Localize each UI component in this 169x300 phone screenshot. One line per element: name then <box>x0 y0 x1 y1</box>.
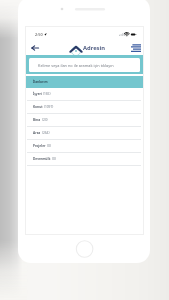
staticText: 2:50 <box>35 32 43 37</box>
staticText: Kelime veya ilan no ile aramak için tıkl… <box>38 63 114 68</box>
staticText: (0) <box>52 157 56 161</box>
button[interactable]: Bina <box>25 114 144 126</box>
button[interactable]: Devremülk <box>25 153 144 165</box>
staticText: (1097) <box>44 105 54 109</box>
staticText: Arsa <box>33 131 41 135</box>
staticText: (23) <box>42 118 48 122</box>
staticText: İşyeri <box>33 92 42 96</box>
staticText: Devremülk <box>33 157 51 161</box>
staticText: İlanlarım <box>33 80 48 84</box>
button[interactable]: Konut <box>25 101 144 113</box>
staticText: Projeler <box>33 144 46 148</box>
staticText: Bina <box>33 118 41 122</box>
button[interactable]: Menu <box>130 43 141 53</box>
button[interactable]: İşyeri <box>25 88 144 100</box>
staticText: Konut <box>33 105 43 109</box>
button[interactable]: Arsa <box>25 127 144 139</box>
staticText: (165) <box>43 92 51 96</box>
button[interactable]: Back <box>30 43 40 53</box>
button[interactable]: Projeler <box>25 140 144 152</box>
button[interactable]: Kelime veya ilan no ile aramak için tıkl… <box>29 58 140 72</box>
staticText: (264) <box>42 131 50 135</box>
staticText: (0) <box>47 144 51 148</box>
staticText: Adresin <box>83 44 106 52</box>
